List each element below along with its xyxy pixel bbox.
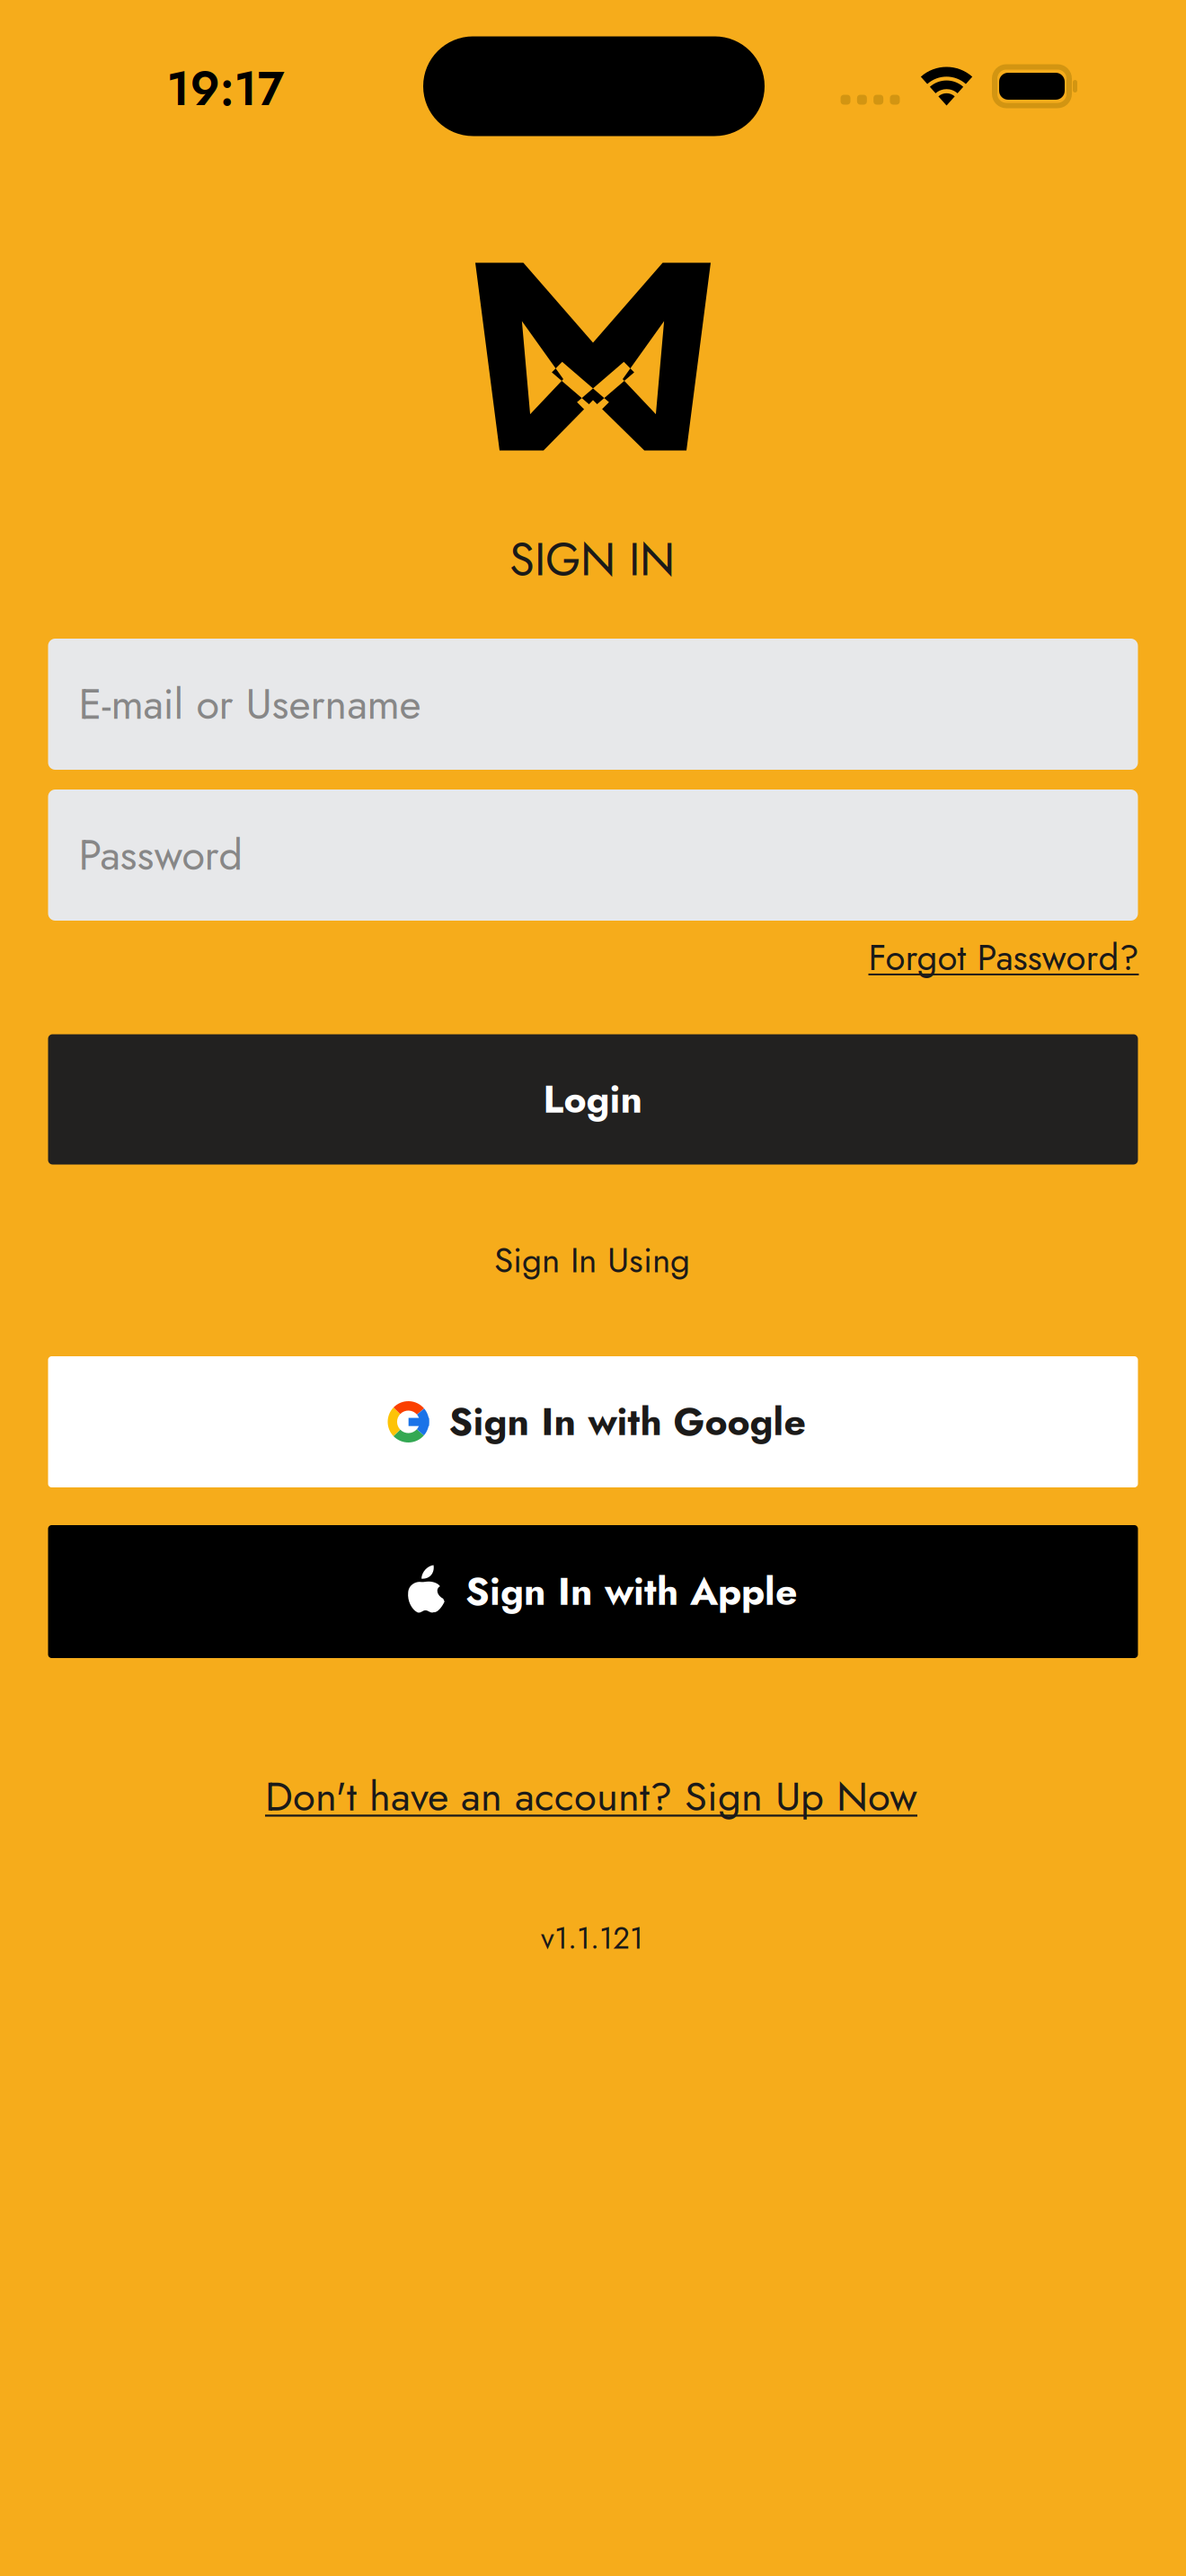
staticText: v1.1.121 (541, 1917, 643, 1960)
button[interactable]: Sign In with Google (48, 1356, 1138, 1487)
staticText: Forgot Password? (868, 932, 1139, 983)
staticText: Sign In Using (494, 1235, 690, 1285)
staticText: Sign In with Google (449, 1394, 805, 1450)
button[interactable]: Sign In with Apple (48, 1525, 1138, 1658)
staticText: Login (543, 1072, 643, 1127)
staticText: 19:17 (167, 55, 284, 123)
staticText: Don't have an account? Sign Up Now (265, 1767, 917, 1826)
button[interactable]: Login (48, 1034, 1138, 1164)
staticText: E-mail or Username (79, 674, 421, 734)
button[interactable]: Forgot Password? (868, 926, 1139, 989)
button[interactable]: Don't have an account? Sign Up Now (265, 1762, 917, 1831)
staticText: Password (79, 825, 243, 885)
staticText: SIGN IN (509, 527, 675, 592)
staticText: Sign In with Apple (465, 1564, 797, 1619)
